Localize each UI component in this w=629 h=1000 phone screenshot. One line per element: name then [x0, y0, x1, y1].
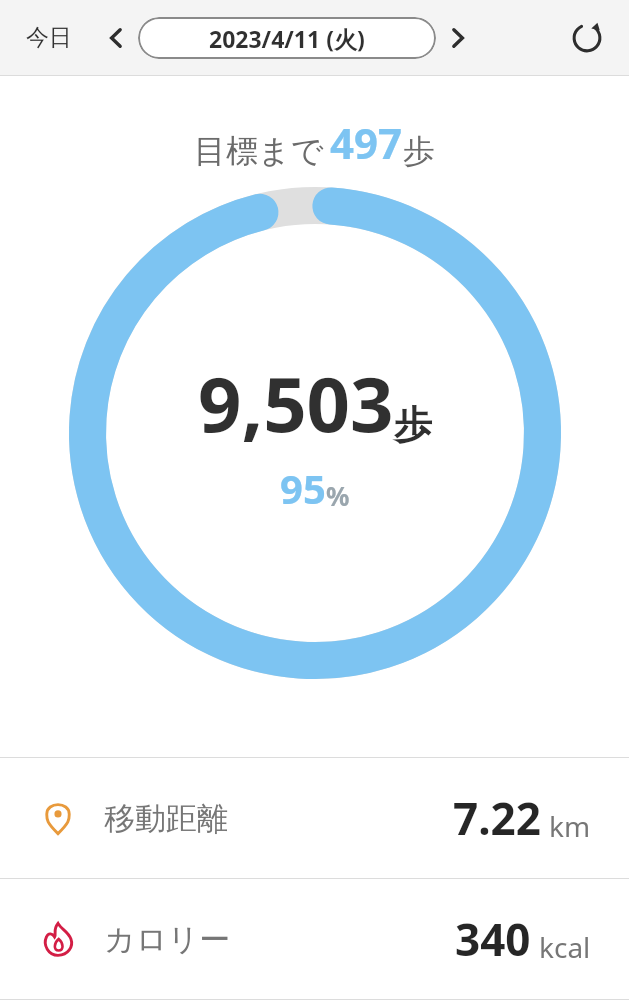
staticText: 移動距離 — [104, 799, 228, 838]
staticText: 9,503 — [198, 351, 394, 455]
staticText: カロリー — [104, 920, 231, 959]
staticText: kcal — [539, 928, 591, 966]
staticText: 7.22 — [453, 788, 541, 848]
button[interactable]: 次の日 — [436, 16, 480, 60]
staticText: 340 — [455, 909, 531, 969]
staticText: 今日 — [26, 23, 72, 52]
staticText: % — [326, 478, 350, 513]
button[interactable]: 前の日 — [94, 16, 138, 60]
staticText: 2023/4/11 (火) — [209, 23, 365, 54]
staticText: 497 — [330, 114, 403, 171]
button[interactable]: 2023/4/11 (火) — [138, 17, 436, 59]
staticText: 歩 — [403, 131, 435, 171]
staticText: 歩 — [394, 401, 432, 449]
staticText: km — [549, 807, 591, 845]
staticText: 95 — [280, 461, 326, 515]
staticText: 目標まで — [194, 131, 324, 171]
button[interactable]: 今日 — [18, 17, 80, 58]
button[interactable]: 更新 — [563, 14, 611, 62]
button[interactable]: 移動距離 — [0, 758, 629, 878]
button[interactable]: カロリー — [0, 879, 629, 999]
